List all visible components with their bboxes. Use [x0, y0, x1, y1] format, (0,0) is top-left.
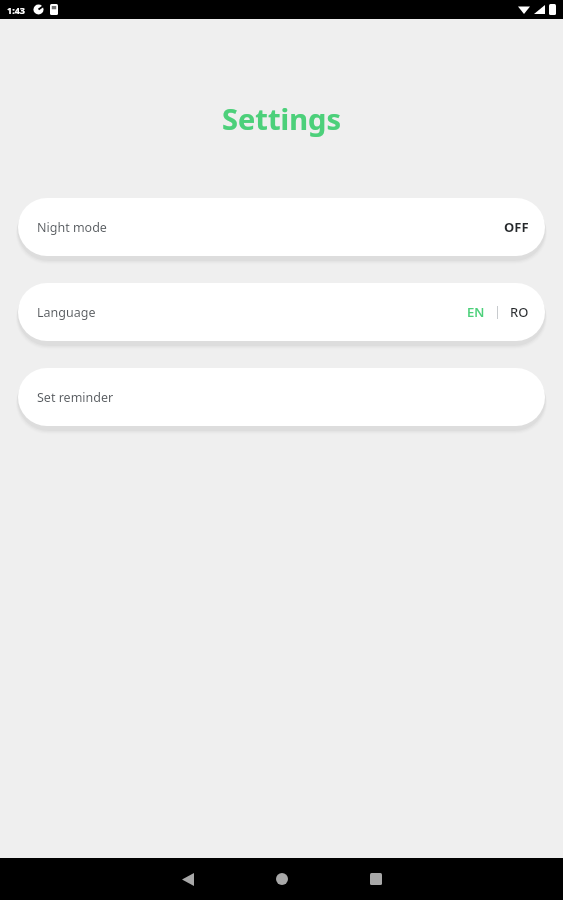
staticText: 1:43 [7, 4, 25, 16]
button[interactable]: OFF [504, 218, 529, 236]
button[interactable]: Recent apps [344, 858, 408, 900]
staticText: Set reminder [37, 389, 114, 406]
staticText: Night mode [37, 219, 107, 236]
button[interactable]: Back [156, 858, 220, 900]
button[interactable]: Home [250, 858, 314, 900]
staticText: Language [37, 304, 96, 321]
staticText: Settings [0, 99, 563, 138]
button[interactable]: EN [467, 303, 485, 321]
button[interactable]: RO [510, 303, 529, 321]
button[interactable]: Set reminder [18, 368, 545, 426]
button[interactable]: Language [18, 283, 545, 341]
button[interactable]: Night mode [18, 198, 545, 256]
